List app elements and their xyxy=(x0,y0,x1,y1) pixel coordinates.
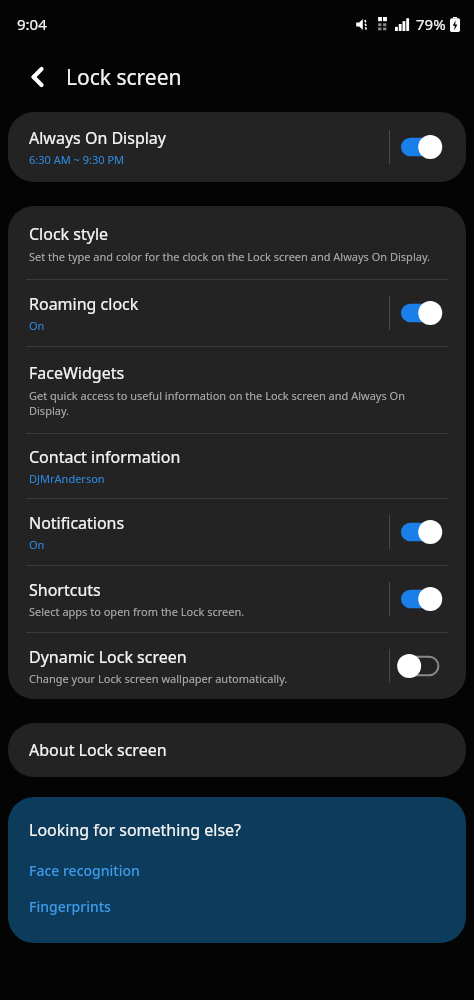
staticText: Dynamic Lock screen xyxy=(29,646,187,668)
button[interactable]: Shortcuts toggle xyxy=(390,579,456,619)
button[interactable]: Always On Display toggle xyxy=(390,127,456,167)
staticText: Roaming clock xyxy=(29,293,139,315)
staticText: DJMrAnderson xyxy=(29,471,105,486)
staticText: On xyxy=(29,318,45,333)
staticText: Lock screen xyxy=(66,63,182,92)
button[interactable]: Notifications xyxy=(8,499,466,565)
staticText: Shortcuts xyxy=(29,579,101,601)
staticText: Face recognition xyxy=(29,861,140,880)
staticText: About Lock screen xyxy=(29,739,167,761)
staticText: Select apps to open from the Lock screen… xyxy=(29,604,245,619)
button[interactable]: Face recognition xyxy=(29,858,140,883)
staticText: Fingerprints xyxy=(29,897,111,916)
button[interactable]: Always On Display xyxy=(8,112,466,182)
staticText: 6:30 AM ~ 9:30 PM xyxy=(29,152,125,167)
button[interactable]: FaceWidgets xyxy=(8,347,466,433)
button[interactable]: Fingerprints xyxy=(29,894,111,919)
button[interactable]: Shortcuts xyxy=(8,566,466,632)
button[interactable]: About Lock screen xyxy=(8,723,466,777)
staticText: On xyxy=(29,537,45,552)
staticText: 9:04 xyxy=(17,14,47,34)
button[interactable]: Notifications toggle xyxy=(390,512,456,552)
button[interactable]: Clock style xyxy=(8,206,466,279)
button[interactable]: Roaming clock xyxy=(8,280,466,346)
staticText: Clock style xyxy=(29,223,109,245)
button[interactable]: Contact information xyxy=(8,434,466,498)
staticText: Notifications xyxy=(29,512,125,534)
button[interactable]: Dynamic Lock screen xyxy=(8,633,466,699)
staticText: Change your Lock screen wallpaper automa… xyxy=(29,671,288,686)
staticText: Get quick access to useful information o… xyxy=(29,388,446,418)
staticText: 79% xyxy=(416,14,446,34)
button[interactable]: Back xyxy=(16,55,60,99)
staticText: Set the type and color for the clock on … xyxy=(29,249,431,264)
button[interactable]: Roaming clock toggle xyxy=(390,293,456,333)
staticText: Contact information xyxy=(29,446,181,468)
button[interactable]: Dynamic Lock screen toggle xyxy=(390,646,456,686)
staticText: FaceWidgets xyxy=(29,362,125,384)
staticText: Looking for something else? xyxy=(29,819,242,841)
staticText: Always On Display xyxy=(29,127,167,149)
